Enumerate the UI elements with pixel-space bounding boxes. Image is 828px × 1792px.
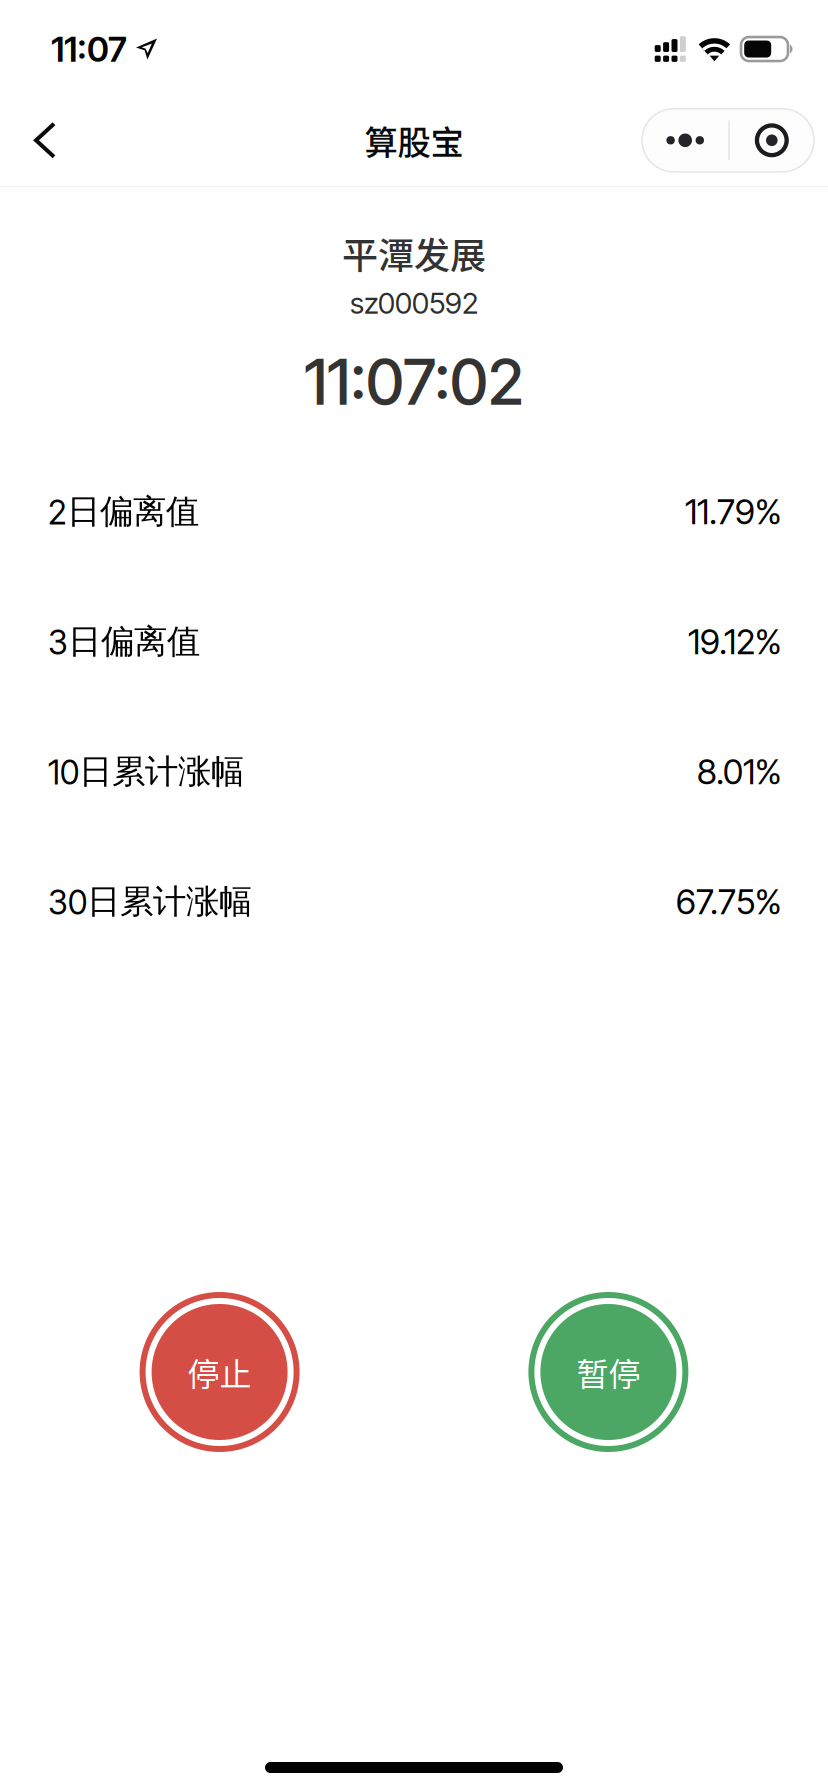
button[interactable]: 暂停 — [528, 1292, 688, 1452]
staticText: 算股宝 — [364, 116, 463, 164]
button[interactable]: More options — [642, 109, 814, 172]
staticText: 停止 — [188, 1349, 252, 1395]
staticText: 30日累计涨幅 — [48, 881, 252, 923]
staticText: 11:07:02 — [304, 344, 524, 420]
staticText: 3日偏离值 — [48, 621, 200, 663]
staticText: 67.75% — [676, 881, 782, 923]
button[interactable]: 停止 — [140, 1292, 300, 1452]
button[interactable]: Back — [7, 100, 83, 180]
staticText: 19.12% — [688, 621, 782, 663]
staticText: 8.01% — [697, 751, 782, 793]
staticText: 2日偏离值 — [48, 491, 199, 533]
staticText: 11.79% — [685, 491, 782, 533]
staticText: sz000592 — [350, 285, 478, 321]
staticText: 10日累计涨幅 — [48, 751, 244, 793]
staticText: 11:07 — [51, 28, 127, 70]
staticText: 平潭发展 — [342, 227, 486, 279]
staticText: 暂停 — [576, 1349, 640, 1395]
